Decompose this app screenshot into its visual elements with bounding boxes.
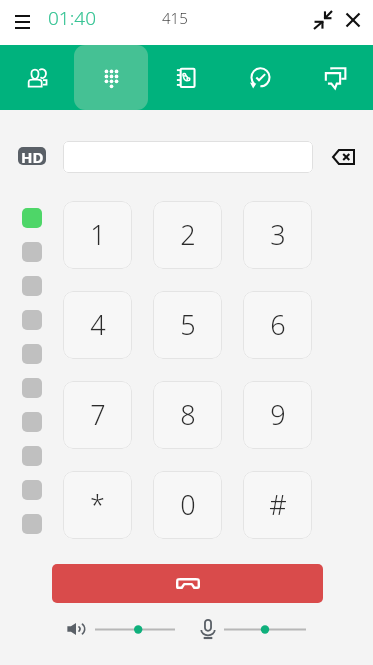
staticText: 0 bbox=[180, 486, 196, 523]
button[interactable]: 4 bbox=[63, 291, 132, 359]
staticText: 1 bbox=[90, 216, 106, 253]
button[interactable]: Microphone gain bbox=[198, 618, 218, 640]
staticText: * bbox=[90, 486, 105, 523]
button[interactable]: 6 bbox=[243, 291, 312, 359]
button[interactable]: HD bbox=[18, 147, 46, 165]
staticText: 4 bbox=[90, 306, 106, 343]
button[interactable]: Speaker volume bbox=[64, 619, 88, 639]
staticText: 7 bbox=[90, 396, 106, 433]
button[interactable]: 9 bbox=[243, 381, 312, 449]
button[interactable]: * bbox=[63, 471, 132, 539]
button[interactable]: Backspace bbox=[328, 143, 358, 171]
staticText: 01:40 bbox=[48, 5, 97, 31]
button[interactable]: Minimize bbox=[310, 7, 336, 33]
staticText: 5 bbox=[180, 306, 196, 343]
button[interactable]: 3 bbox=[243, 201, 312, 269]
button[interactable]: Speaker volume slider bbox=[91, 621, 179, 638]
button[interactable]: Close bbox=[340, 7, 366, 33]
button[interactable]: Contacts bbox=[0, 45, 74, 110]
staticText: 2 bbox=[180, 216, 196, 253]
staticText: 415 bbox=[162, 8, 188, 28]
button[interactable]: 7 bbox=[63, 381, 132, 449]
button[interactable]: End call bbox=[52, 564, 323, 603]
button[interactable]: Phone book bbox=[148, 45, 223, 110]
staticText: # bbox=[269, 486, 287, 523]
button[interactable]: # bbox=[243, 471, 312, 539]
button[interactable]: 1 bbox=[63, 201, 132, 269]
button[interactable]: Dialpad bbox=[74, 45, 148, 110]
button[interactable]: Microphone gain slider bbox=[220, 621, 310, 638]
button[interactable]: Messages bbox=[298, 45, 373, 110]
button[interactable]: 5 bbox=[153, 291, 222, 359]
button[interactable]: Menu bbox=[8, 8, 36, 36]
button[interactable]: 0 bbox=[153, 471, 222, 539]
staticText: 3 bbox=[270, 216, 286, 253]
staticText: 9 bbox=[270, 396, 286, 433]
button[interactable] bbox=[63, 141, 313, 173]
button[interactable]: Recents bbox=[223, 45, 298, 110]
staticText: 8 bbox=[180, 396, 196, 433]
staticText: HD bbox=[21, 147, 44, 165]
button[interactable]: 8 bbox=[153, 381, 222, 449]
staticText: 6 bbox=[270, 306, 286, 343]
button[interactable]: 2 bbox=[153, 201, 222, 269]
